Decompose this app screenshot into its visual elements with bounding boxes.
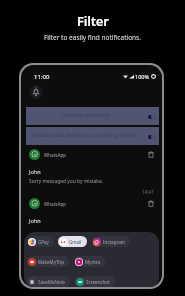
button[interactable]: Instagram — [93, 236, 125, 247]
staticText: Gmail — [69, 239, 82, 245]
button[interactable]: Gmail — [59, 236, 82, 247]
button[interactable]: MakeMyTrip — [28, 256, 64, 267]
staticText: 100% — [135, 73, 150, 80]
staticText: MakeMyTrip — [38, 259, 64, 265]
staticText: No background restrictions, functioning … — [31, 132, 138, 138]
other: Delete — [148, 200, 154, 207]
staticText: WhatsApp — [44, 152, 67, 158]
staticText: Myntra — [85, 259, 101, 265]
button[interactable]: WhatsApp — [29, 149, 154, 195]
staticText: GPay — [38, 239, 49, 245]
staticText: 11:00 — [34, 73, 50, 81]
staticText: Sorry messaged you by mistake. — [29, 178, 104, 185]
staticText: John — [29, 217, 41, 224]
button[interactable]: Notifications — [29, 85, 43, 99]
button[interactable]: Screenshot — [76, 276, 110, 287]
staticText: WhatsApp — [44, 201, 67, 207]
staticText: Filter — [77, 12, 109, 30]
staticText: Filter to easily find notifications. — [44, 33, 141, 42]
staticText: Capturing notifications — [61, 112, 111, 118]
staticText: 14:47 — [142, 189, 154, 195]
staticText: John — [29, 168, 41, 175]
button[interactable]: No background restrictions, functioning … — [26, 127, 159, 145]
staticText: Screenshot — [86, 279, 110, 285]
staticText: SaveMeNote — [38, 279, 65, 285]
button[interactable]: GPay — [28, 236, 49, 247]
staticText: Instagram — [103, 239, 125, 245]
other: Delete — [148, 151, 154, 158]
button[interactable]: Myntra — [75, 256, 101, 267]
button[interactable]: WhatsApp — [29, 198, 154, 224]
button[interactable]: Capturing notifications — [26, 107, 159, 125]
button[interactable]: SaveMeNote — [28, 276, 65, 287]
